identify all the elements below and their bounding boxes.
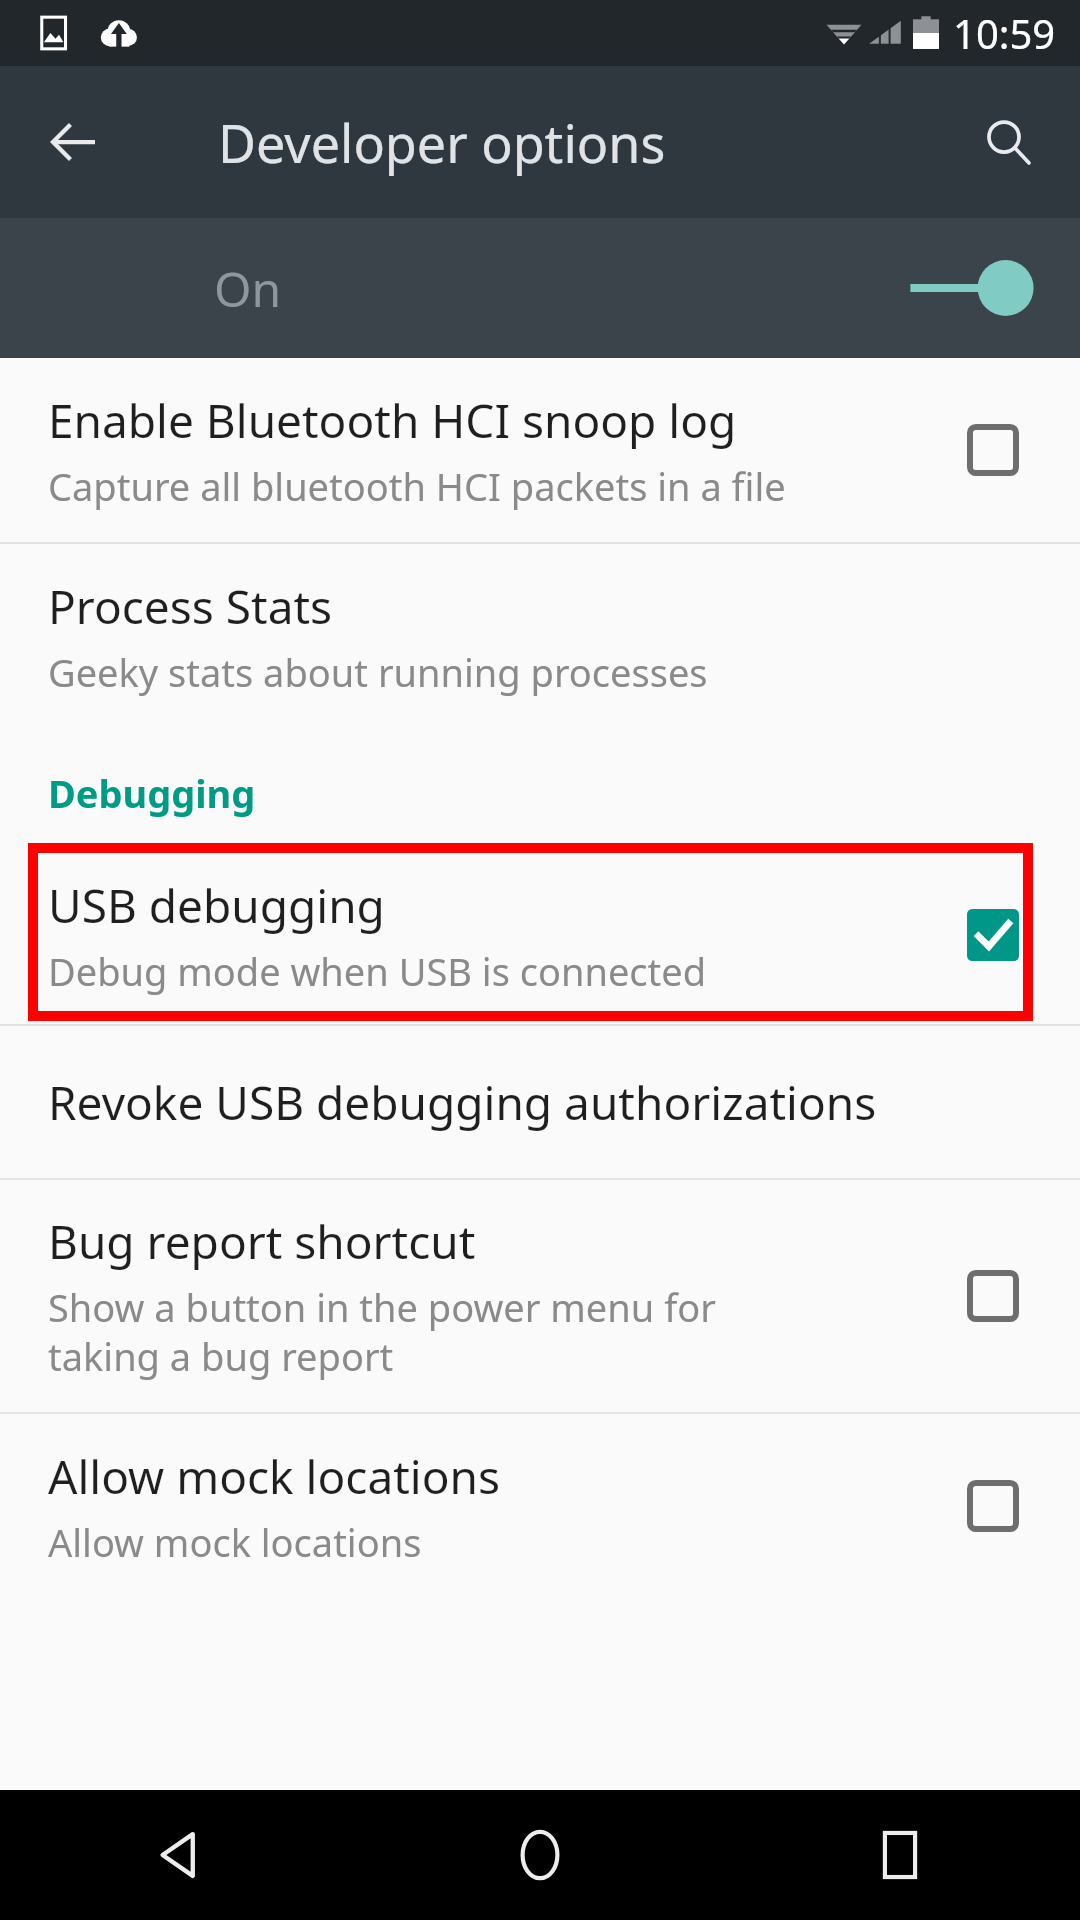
button[interactable]: On (0, 218, 1080, 358)
button[interactable]: USB debugging (0, 846, 1080, 1024)
staticText: Bug report shortcut (48, 1210, 476, 1273)
button[interactable]: USB debugging (950, 892, 1036, 978)
staticText: Debugging (48, 767, 256, 819)
staticText: Revoke USB debugging authorizations (48, 1071, 877, 1134)
button[interactable]: Back (26, 94, 122, 190)
button[interactable]: Revoke USB debugging authorizations (0, 1026, 1080, 1178)
staticText: Developer options (218, 107, 666, 178)
button[interactable]: Enable Bluetooth HCI snoop log (0, 358, 1080, 542)
staticText: Allow mock locations (48, 1516, 422, 1568)
staticText: Capture all bluetooth HCI packets in a f… (48, 460, 786, 512)
button[interactable]: Allow mock locations (0, 1414, 1080, 1598)
button[interactable]: Allow mock locations (950, 1463, 1036, 1549)
staticText: Geeky stats about running processes (48, 646, 708, 698)
button[interactable]: Search (960, 94, 1056, 190)
button[interactable]: Back (0, 1790, 360, 1920)
button[interactable]: Bug report shortcut (950, 1253, 1036, 1339)
button[interactable]: Recent apps (720, 1790, 1080, 1920)
staticText: On (214, 256, 282, 321)
staticText: Process Stats (48, 575, 333, 638)
staticText: Allow mock locations (48, 1445, 500, 1508)
button[interactable]: Home (360, 1790, 720, 1920)
button[interactable]: Process Stats (0, 544, 1080, 728)
staticText: Show a button in the power menu for taki… (48, 1281, 716, 1382)
button[interactable]: Bug report shortcut (0, 1180, 1080, 1412)
staticText: Enable Bluetooth HCI snoop log (48, 389, 737, 452)
staticText: Debug mode when USB is connected (48, 945, 707, 997)
staticText: USB debugging (48, 874, 385, 937)
staticText: 10:59 (953, 6, 1056, 60)
button[interactable]: Enable Bluetooth HCI snoop log (950, 407, 1036, 493)
